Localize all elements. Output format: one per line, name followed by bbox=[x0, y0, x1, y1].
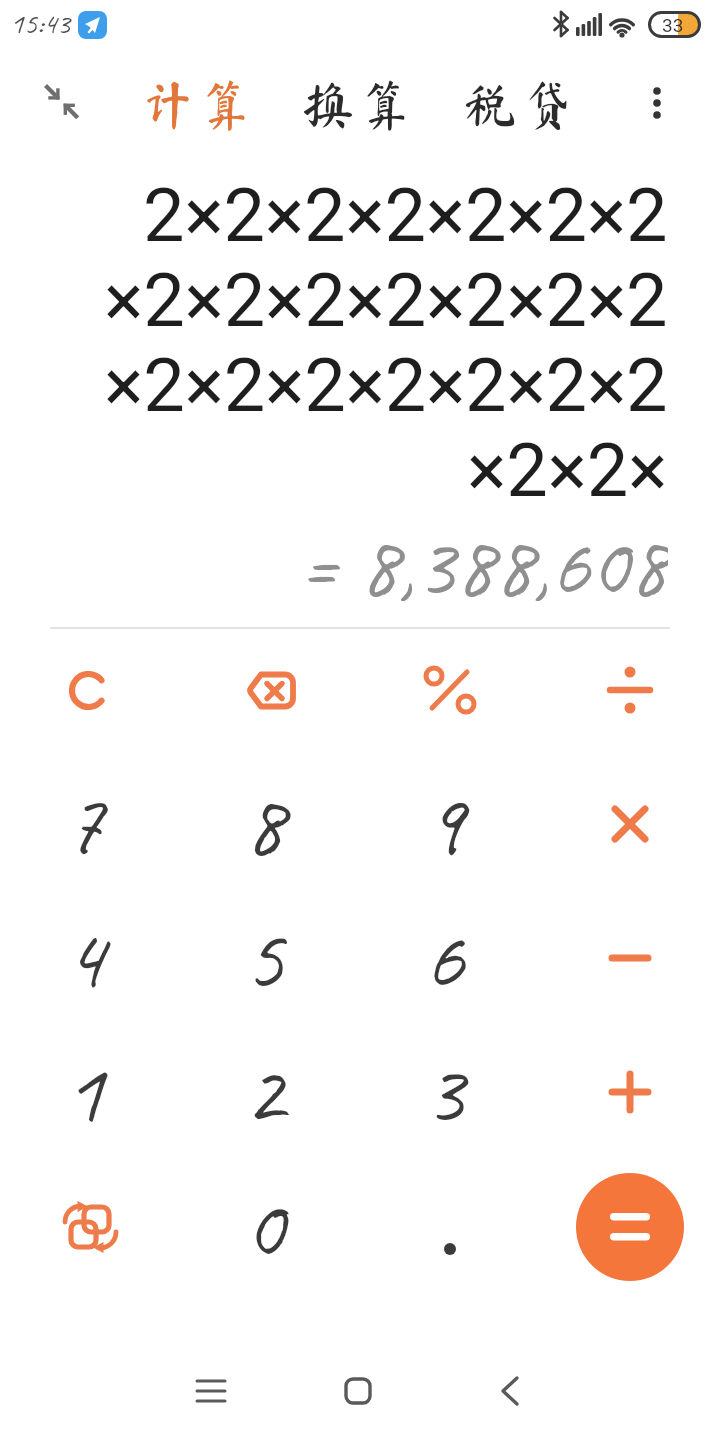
button[interactable] bbox=[564, 764, 696, 884]
button[interactable] bbox=[564, 630, 696, 750]
button[interactable]: 0 bbox=[204, 1167, 336, 1287]
staticText: 2×2×2×2×2×2×2 bbox=[143, 172, 668, 259]
staticText: 计算 bbox=[142, 78, 259, 130]
button[interactable] bbox=[632, 78, 682, 128]
button[interactable] bbox=[564, 898, 696, 1018]
button[interactable] bbox=[78, 11, 107, 39]
button[interactable]: 9 bbox=[384, 764, 516, 884]
button[interactable]: 2 bbox=[204, 1032, 336, 1152]
button[interactable] bbox=[24, 630, 156, 750]
button[interactable]: 5 bbox=[204, 898, 336, 1018]
staticText: = 8,388,608 bbox=[299, 510, 668, 610]
staticText: 8 bbox=[244, 769, 284, 880]
button[interactable] bbox=[171, 1351, 251, 1431]
staticText: 5 bbox=[244, 903, 284, 1014]
staticText: 换算 bbox=[302, 78, 419, 130]
staticText: ×2×2×2×2×2×2×2 bbox=[104, 257, 668, 344]
button[interactable] bbox=[564, 1032, 696, 1152]
staticText: 1 bbox=[64, 1037, 104, 1148]
button[interactable]: 6 bbox=[384, 898, 516, 1018]
button[interactable]: 1 bbox=[24, 1032, 156, 1152]
button[interactable] bbox=[204, 630, 336, 750]
button[interactable] bbox=[470, 1351, 550, 1431]
button[interactable]: 3 bbox=[384, 1032, 516, 1152]
button[interactable] bbox=[384, 1167, 516, 1287]
button[interactable]: 税贷 bbox=[462, 66, 582, 142]
button[interactable]: 8 bbox=[204, 764, 336, 884]
button[interactable] bbox=[318, 1351, 398, 1431]
staticText: ×2×2×2×2×2×2×2 bbox=[104, 342, 668, 429]
button[interactable] bbox=[576, 1173, 684, 1281]
staticText: 15:43 bbox=[10, 4, 70, 42]
staticText: 6 bbox=[424, 903, 464, 1014]
staticText: ×2×2× bbox=[467, 427, 668, 514]
staticText: 9 bbox=[424, 769, 464, 880]
staticText: 2 bbox=[244, 1037, 284, 1148]
staticText: 4 bbox=[64, 903, 104, 1014]
staticText: 税贷 bbox=[464, 78, 581, 130]
button[interactable]: 计算 bbox=[140, 66, 260, 142]
button[interactable] bbox=[384, 630, 516, 750]
staticText: 3 bbox=[424, 1037, 464, 1148]
button[interactable] bbox=[36, 76, 88, 128]
staticText: 33 bbox=[662, 14, 684, 36]
staticText: 7 bbox=[64, 769, 104, 880]
button[interactable] bbox=[24, 1167, 156, 1287]
staticText: 0 bbox=[244, 1172, 284, 1283]
button[interactable]: 4 bbox=[24, 898, 156, 1018]
button[interactable]: 换算 bbox=[300, 66, 420, 142]
button[interactable]: 7 bbox=[24, 764, 156, 884]
